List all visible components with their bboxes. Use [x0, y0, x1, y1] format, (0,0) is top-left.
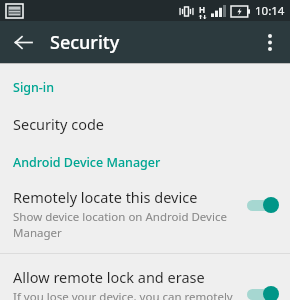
staticText: Sign-in [13, 79, 55, 96]
staticText: Allow remote lock and erase [13, 267, 205, 287]
button[interactable]: More options [254, 26, 286, 58]
button[interactable]: Security code [0, 109, 290, 139]
staticText: Security [50, 30, 120, 55]
button[interactable]: Allow remote lock and erase [0, 267, 290, 300]
button[interactable]: Toggle Allow remote lock and erase [242, 282, 282, 300]
staticText: Security code [13, 114, 105, 134]
staticText: Android Device Manager [13, 154, 161, 171]
button[interactable]: Toggle Remotely locate this device [242, 193, 282, 217]
staticText: H [199, 4, 206, 15]
button[interactable]: Navigate up [7, 26, 39, 58]
button[interactable]: Remotely locate this device [0, 187, 290, 242]
staticText: 10:14 [255, 3, 285, 19]
staticText: Show device location on Android Device M… [13, 209, 242, 241]
staticText: Remotely locate this device [13, 187, 198, 207]
staticText: If you lose your device, you can remotel… [13, 289, 242, 300]
